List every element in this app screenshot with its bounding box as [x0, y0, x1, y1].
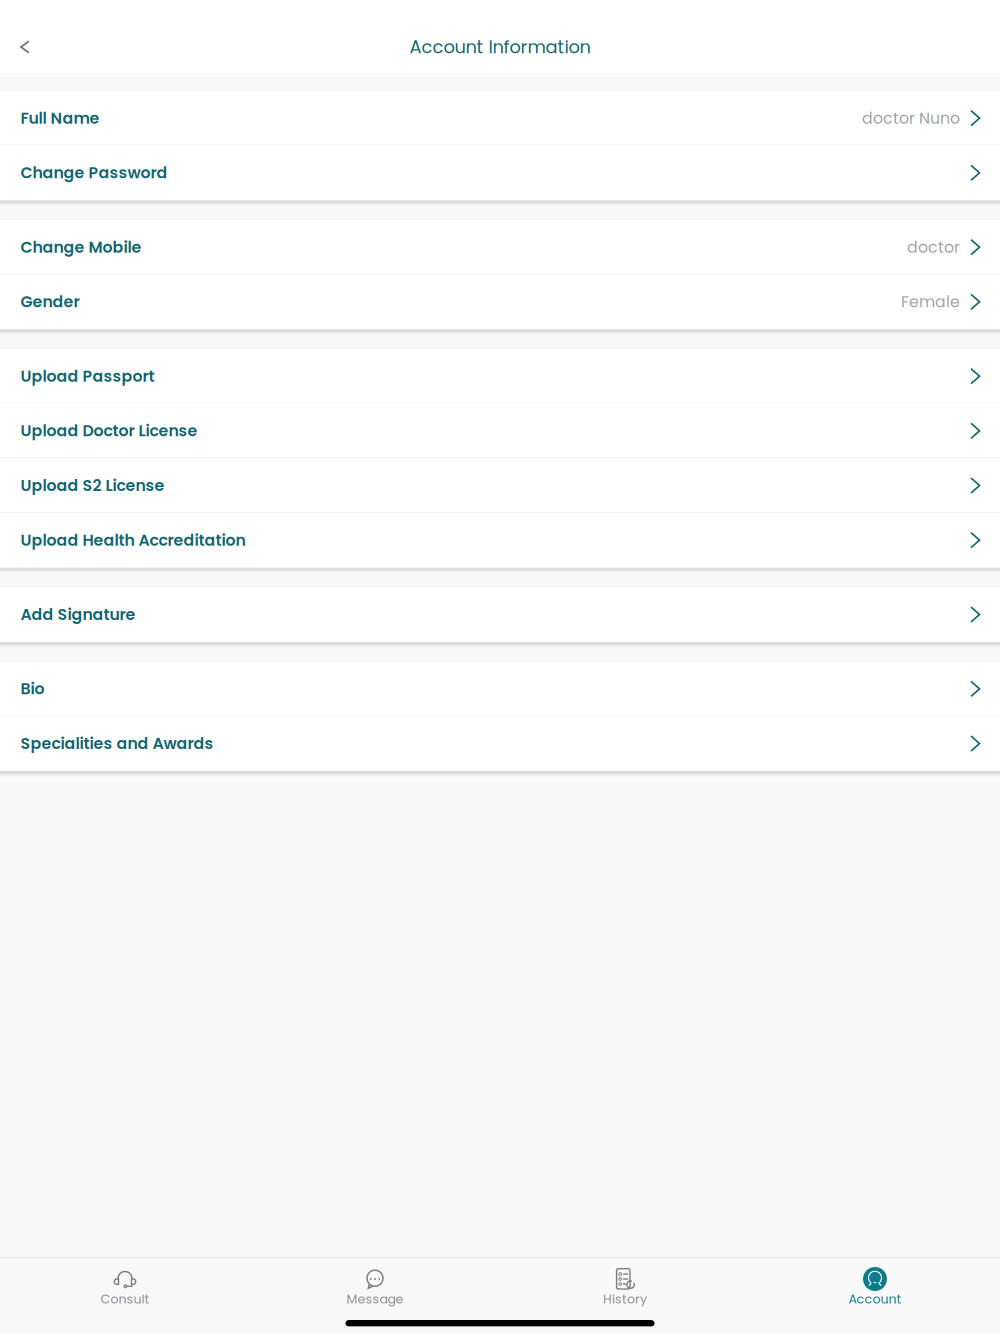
- button[interactable]: Specialities and Awards: [0, 716, 1000, 771]
- staticText: doctor: [907, 236, 960, 258]
- staticText: Bio: [20, 678, 44, 700]
- staticText: Change Mobile: [20, 236, 141, 258]
- button[interactable]: Upload Health Accreditation: [0, 513, 1000, 568]
- staticText: Specialities and Awards: [20, 732, 213, 754]
- staticText: Gender: [20, 291, 79, 313]
- button[interactable]: Account: [750, 1266, 1000, 1310]
- button[interactable]: Bio: [0, 661, 1000, 716]
- button[interactable]: Upload Doctor License: [0, 403, 1000, 458]
- staticText: Full Name: [20, 107, 99, 129]
- button[interactable]: Full Name: [0, 91, 1000, 145]
- staticText: Upload Doctor License: [20, 420, 197, 442]
- button[interactable]: Back: [0, 30, 48, 64]
- button[interactable]: Upload S2 License: [0, 458, 1000, 513]
- staticText: Account Information: [409, 34, 590, 59]
- staticText: Consult: [100, 1290, 149, 1308]
- staticText: History: [603, 1290, 647, 1308]
- staticText: doctor Nuno: [862, 107, 960, 129]
- button[interactable]: Message: [250, 1266, 500, 1310]
- button[interactable]: Change Password: [0, 145, 1000, 200]
- staticText: Message: [346, 1290, 403, 1308]
- staticText: Upload S2 License: [20, 474, 164, 496]
- staticText: Change Password: [20, 162, 167, 184]
- staticText: Upload Health Accreditation: [20, 529, 245, 551]
- staticText: Upload Passport: [20, 365, 154, 387]
- button[interactable]: Upload Passport: [0, 349, 1000, 403]
- staticText: Account: [848, 1290, 901, 1308]
- button[interactable]: Gender: [0, 274, 1000, 329]
- button[interactable]: Change Mobile: [0, 220, 1000, 274]
- staticText: Female: [901, 291, 960, 313]
- button[interactable]: Add Signature: [0, 587, 1000, 642]
- button[interactable]: Consult: [0, 1266, 250, 1310]
- button[interactable]: History: [500, 1266, 750, 1310]
- staticText: Add Signature: [20, 603, 135, 625]
